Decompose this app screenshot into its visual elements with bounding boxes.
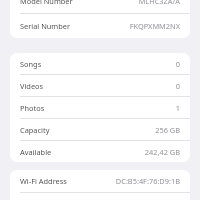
staticText: 0: [175, 59, 180, 69]
staticText: Photos: [20, 103, 45, 113]
button[interactable]: Capacity: [10, 119, 190, 140]
staticText: 1: [175, 103, 180, 113]
staticText: MLHC3ZA/A: [138, 0, 180, 6]
button[interactable]: Available: [10, 141, 190, 162]
staticText: Videos: [20, 81, 44, 91]
staticText: Capacity: [20, 125, 50, 135]
staticText: FKQPXMM2NX: [129, 21, 180, 31]
button[interactable]: Wi-Fi Address: [10, 170, 190, 192]
button[interactable]: Videos: [10, 75, 190, 96]
staticText: Wi-Fi Address: [20, 176, 67, 186]
button[interactable]: Model Number: [10, 0, 190, 13]
staticText: DC:B5:4F:76:D9:1B: [115, 176, 180, 186]
staticText: 256 GB: [155, 125, 180, 135]
staticText: 0: [175, 81, 180, 91]
staticText: Model Number: [20, 0, 73, 6]
staticText: 242,42 GB: [144, 147, 180, 157]
button[interactable]: Songs: [10, 53, 190, 74]
button[interactable]: Photos: [10, 97, 190, 118]
staticText: Songs: [20, 59, 42, 69]
button[interactable]: Serial Number: [10, 14, 190, 38]
staticText: Serial Number: [20, 21, 71, 31]
staticText: Available: [20, 147, 52, 157]
